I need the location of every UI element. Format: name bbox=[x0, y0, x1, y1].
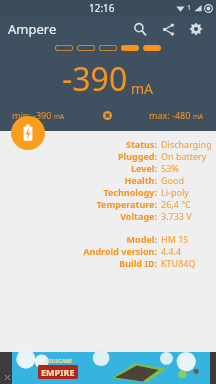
staticText: Status: bbox=[125, 138, 157, 150]
staticText: Temperature: bbox=[96, 198, 157, 210]
staticText: Plugged: bbox=[117, 150, 157, 162]
button[interactable]: GOODGAME bbox=[0, 352, 216, 384]
staticText: HM 1S bbox=[161, 233, 189, 245]
button[interactable]: Share bbox=[156, 17, 180, 41]
staticText: Health: bbox=[124, 174, 157, 186]
staticText: 12:16 bbox=[89, 1, 115, 15]
button[interactable]: Battery bbox=[11, 116, 45, 150]
staticText: Ampere bbox=[8, 20, 57, 38]
staticText: 3.733 V bbox=[161, 210, 192, 222]
staticText: Discharging bbox=[161, 138, 212, 150]
button[interactable]: Close ad bbox=[2, 372, 12, 382]
staticText: mA bbox=[131, 79, 154, 98]
staticText: Android version: bbox=[83, 245, 157, 257]
button[interactable]: Settings bbox=[184, 17, 208, 41]
staticText: min: -390 bbox=[12, 109, 52, 121]
staticText: On battery bbox=[161, 150, 207, 162]
staticText: EMPIRE bbox=[41, 366, 75, 378]
staticText: max: -480 bbox=[149, 109, 191, 121]
staticText: mA bbox=[54, 112, 65, 121]
button[interactable]: Search bbox=[128, 17, 152, 41]
staticText: Level: bbox=[131, 162, 157, 174]
staticText: mA bbox=[193, 112, 204, 121]
staticText: 26,4 °C bbox=[161, 198, 191, 210]
staticText: KTU84Q bbox=[161, 257, 196, 269]
staticText: 4.4.4 bbox=[161, 245, 182, 257]
staticText: 1 bbox=[187, 3, 192, 13]
staticText: Model: bbox=[126, 233, 157, 245]
staticText: Technology: bbox=[103, 186, 157, 198]
staticText: Li-poly bbox=[161, 186, 189, 198]
staticText: 53% bbox=[161, 162, 179, 174]
staticText: GOODGAME bbox=[45, 358, 72, 364]
staticText: Voltage: bbox=[120, 210, 157, 222]
staticText: -390 bbox=[62, 57, 128, 101]
staticText: Good bbox=[161, 174, 184, 186]
staticText: Build ID: bbox=[119, 257, 157, 269]
button[interactable]: Reset bbox=[99, 107, 115, 123]
